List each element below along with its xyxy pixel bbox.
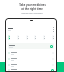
button[interactable] [8,50,54,56]
button[interactable] [17,35,19,40]
button[interactable] [8,62,54,68]
staticText: Take your medicines [19,3,46,7]
button[interactable] [43,35,45,40]
button[interactable]: More options [53,27,54,32]
button[interactable] [8,56,54,62]
staticText: at the right time [21,7,43,11]
staticText: Manage your reminders [21,12,43,15]
button[interactable] [52,35,54,40]
button[interactable] [8,68,54,72]
button[interactable] [8,35,10,40]
button[interactable] [34,35,36,40]
button[interactable] [26,35,28,40]
button[interactable] [9,43,53,49]
